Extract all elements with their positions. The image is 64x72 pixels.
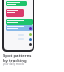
button[interactable] bbox=[6, 1, 27, 6]
staticText: by tracking bbox=[3, 58, 27, 64]
button[interactable] bbox=[6, 25, 33, 31]
button[interactable]: Mood entry bbox=[29, 33, 32, 36]
button[interactable]: Mood entry bbox=[29, 43, 32, 46]
staticText: your daily moods bbox=[3, 62, 25, 66]
staticText: Spot patterns bbox=[3, 53, 32, 59]
button[interactable] bbox=[6, 9, 24, 17]
button[interactable]: Mood entry bbox=[29, 38, 32, 41]
button[interactable]: Mood entry bbox=[29, 27, 32, 30]
button[interactable] bbox=[6, 19, 33, 25]
